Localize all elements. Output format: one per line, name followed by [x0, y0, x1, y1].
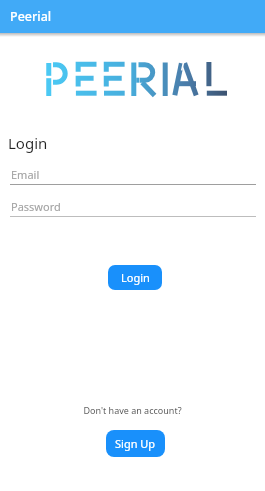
staticText: Sign Up	[115, 436, 156, 451]
staticText: Peerial	[10, 8, 52, 25]
staticText: Login	[8, 133, 48, 153]
staticText: Login	[121, 270, 150, 285]
staticText: Don't have an account?	[0, 404, 265, 416]
staticText: Password	[11, 199, 61, 214]
button[interactable]: Password	[10, 197, 256, 218]
staticText: Email	[11, 167, 40, 182]
button[interactable]: Login	[108, 265, 162, 290]
button[interactable]: Email	[10, 165, 256, 186]
button[interactable]: Sign Up	[106, 430, 165, 457]
